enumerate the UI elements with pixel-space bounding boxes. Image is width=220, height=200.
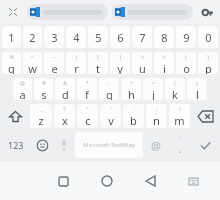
staticText: ~: [53, 54, 56, 61]
staticText: ": [86, 106, 89, 113]
button[interactable]: (: [176, 52, 196, 74]
button[interactable]: ;: [146, 104, 167, 128]
button[interactable]: At sign: [144, 130, 168, 160]
staticText: g: [106, 87, 113, 100]
button[interactable]: !?: [168, 130, 192, 160]
button[interactable]: Expand toolbar: [3, 2, 23, 22]
button[interactable]: +: [121, 78, 141, 100]
staticText: <: [141, 54, 144, 61]
staticText: *: [86, 80, 89, 87]
button[interactable]: *: [77, 78, 97, 100]
button[interactable]: ): [187, 78, 207, 100]
staticText: l: [196, 87, 199, 100]
staticText: p: [205, 61, 212, 74]
staticText: r: [74, 61, 79, 74]
button[interactable]: <: [132, 52, 152, 74]
button[interactable]: 7: [132, 26, 152, 48]
button[interactable]: Emoji: [30, 130, 54, 160]
button[interactable]: ]: [110, 52, 130, 74]
staticText: 1: [8, 30, 15, 45]
button[interactable]: =: [143, 78, 163, 100]
staticText: c: [85, 113, 91, 128]
staticText: @: [20, 80, 25, 87]
staticText: (: [174, 80, 176, 87]
staticText: #: [42, 80, 46, 87]
staticText: 2: [29, 30, 36, 45]
button[interactable]: [112, 4, 193, 20]
button[interactable]: ^: [23, 52, 42, 74]
button[interactable]: Voice input: [54, 130, 74, 160]
staticText: =: [152, 80, 155, 87]
button[interactable]: 1: [2, 26, 21, 48]
button[interactable]: 0: [198, 26, 218, 48]
button[interactable]: 6: [110, 26, 130, 48]
staticText: a: [19, 87, 26, 100]
staticText: t: [96, 61, 100, 74]
staticText: @: [151, 138, 161, 153]
staticText: |: [75, 54, 78, 61]
button[interactable]: -: [99, 78, 119, 100]
button[interactable]: Enter: [192, 130, 218, 160]
staticText: 8: [161, 30, 168, 45]
button[interactable]: [27, 4, 108, 20]
button[interactable]: 123: [2, 130, 30, 160]
button[interactable]: Back: [137, 168, 163, 194]
button[interactable]: 4: [66, 26, 86, 48]
button[interactable]: _: [30, 104, 52, 128]
staticText: m: [174, 113, 185, 128]
staticText: s: [41, 87, 47, 100]
staticText: :: [133, 106, 135, 113]
staticText: j: [152, 87, 155, 100]
button[interactable]: Recents: [50, 168, 76, 194]
button[interactable]: :: [123, 104, 144, 128]
button[interactable]: 2: [23, 26, 42, 48]
button[interactable]: ): [198, 52, 218, 74]
button[interactable]: ': [100, 104, 121, 128]
button[interactable]: Password key: [197, 2, 217, 22]
staticText: u: [139, 61, 146, 74]
button[interactable]: Backspace: [191, 102, 219, 130]
button[interactable]: @: [13, 78, 32, 100]
staticText: z: [38, 113, 44, 128]
staticText: .: [179, 142, 182, 156]
button[interactable]: #: [34, 78, 53, 100]
staticText: Microsoft SwiftKey: [83, 141, 135, 149]
staticText: >: [163, 54, 166, 61]
button[interactable]: /: [169, 104, 190, 128]
staticText: x: [62, 113, 68, 128]
staticText: ]: [119, 54, 121, 61]
button[interactable]: 9: [176, 26, 196, 48]
staticText: 5: [95, 30, 102, 45]
button[interactable]: ~: [44, 52, 64, 74]
button[interactable]: >: [154, 52, 174, 74]
staticText: ): [196, 80, 198, 87]
staticText: 9: [183, 30, 190, 45]
staticText: v: [108, 113, 114, 128]
button[interactable]: Shift: [1, 102, 29, 130]
staticText: b: [130, 113, 137, 128]
button[interactable]: (: [165, 78, 185, 100]
button[interactable]: Home: [94, 168, 120, 194]
button[interactable]: Microsoft SwiftKey: [75, 132, 143, 158]
button[interactable]: 5: [88, 26, 108, 48]
staticText: k: [172, 87, 178, 100]
staticText: -: [108, 80, 110, 87]
staticText: 6: [117, 30, 124, 45]
button[interactable]: |: [66, 52, 86, 74]
staticText: h: [128, 87, 135, 100]
staticText: i: [163, 61, 166, 74]
staticText: ;: [156, 106, 158, 113]
staticText: w: [28, 61, 37, 74]
staticText: d: [62, 87, 69, 100]
button[interactable]: %: [2, 52, 21, 74]
staticText: /: [179, 106, 181, 113]
staticText: 0: [205, 30, 212, 45]
button[interactable]: [: [88, 52, 108, 74]
button[interactable]: ₹: [54, 104, 75, 128]
button[interactable]: 3: [44, 26, 64, 48]
button[interactable]: ": [77, 104, 98, 128]
staticText: 4: [73, 30, 80, 45]
button[interactable]: 8: [154, 26, 174, 48]
button[interactable]: Switch keyboard: [180, 168, 206, 194]
button[interactable]: &: [55, 78, 75, 100]
